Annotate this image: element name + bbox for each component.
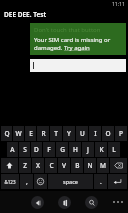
button[interactable]: DEE DEE. Test: [0, 8, 128, 20]
staticText: &123: [4, 179, 16, 185]
staticText: Q: [4, 129, 10, 138]
button[interactable]: Search: [85, 196, 98, 209]
button[interactable]: A: [7, 142, 18, 157]
button[interactable]: L: [108, 142, 120, 157]
button[interactable]: D: [31, 142, 42, 157]
button[interactable]: Backspace: [110, 158, 127, 173]
staticText: M: [100, 161, 106, 170]
staticText: E: [29, 129, 33, 138]
button[interactable]: Enter: [108, 174, 127, 189]
staticText: D: [34, 145, 39, 154]
staticText: P: [119, 129, 123, 138]
button[interactable]: T: [50, 126, 62, 141]
staticText: C: [49, 161, 54, 170]
staticText: N: [87, 161, 93, 170]
button[interactable]: P: [115, 126, 127, 141]
button[interactable]: [30, 59, 126, 72]
staticText: X: [36, 161, 40, 170]
staticText: H: [73, 145, 78, 154]
button[interactable]: .: [94, 174, 107, 189]
button[interactable]: F: [43, 142, 55, 157]
button[interactable]: J: [82, 142, 94, 157]
staticText: J: [87, 145, 89, 154]
button[interactable]: Z: [19, 158, 31, 173]
staticText: R: [41, 129, 46, 138]
staticText: damaged.: [34, 44, 64, 52]
staticText: A: [10, 145, 15, 154]
button[interactable]: S: [19, 142, 30, 157]
button[interactable]: K: [95, 142, 107, 157]
staticText: K: [99, 145, 104, 154]
staticText: T: [54, 129, 58, 138]
staticText: Z: [23, 161, 27, 170]
button[interactable]: G: [56, 142, 68, 157]
button[interactable]: C: [45, 158, 57, 173]
button[interactable]: X: [32, 158, 44, 173]
button[interactable]: R: [37, 126, 49, 141]
button[interactable]: W: [13, 126, 24, 141]
button[interactable]: O: [102, 126, 114, 141]
staticText: Don't touch that button: [34, 26, 101, 34]
staticText: U: [80, 129, 85, 138]
button[interactable]: I: [89, 126, 101, 141]
button[interactable]: More options: [113, 201, 123, 203]
staticText: V: [62, 161, 66, 170]
staticText: F: [47, 145, 51, 154]
staticText: 11:11: [112, 1, 125, 8]
button[interactable]: Emoji: [34, 174, 47, 189]
staticText: S: [23, 145, 27, 154]
staticText: O: [105, 129, 111, 138]
staticText: space: [63, 178, 78, 185]
staticText: W: [15, 129, 22, 138]
staticText: Y: [67, 129, 71, 138]
button[interactable]: space: [48, 174, 93, 189]
staticText: ,: [26, 177, 28, 186]
staticText: DEE DEE. Test: [4, 10, 47, 19]
staticText: L: [112, 145, 116, 154]
button[interactable]: N: [84, 158, 96, 173]
button[interactable]: Don't touch that button: [30, 23, 126, 55]
button[interactable]: E: [25, 126, 36, 141]
button[interactable]: Y: [63, 126, 75, 141]
button[interactable]: Back: [31, 196, 44, 209]
button[interactable]: Q: [1, 126, 12, 141]
staticText: B: [75, 161, 80, 170]
button[interactable]: Home: [58, 196, 71, 209]
button[interactable]: ,: [20, 174, 33, 189]
staticText: Your SIM card is missing or: [34, 36, 111, 44]
button[interactable]: Shift: [1, 158, 18, 173]
button[interactable]: B: [71, 158, 83, 173]
button[interactable]: &123: [1, 174, 19, 189]
button[interactable]: U: [76, 126, 88, 141]
button[interactable]: V: [58, 158, 70, 173]
staticText: G: [60, 145, 65, 154]
button[interactable]: Try again: [64, 44, 90, 52]
staticText: I: [94, 129, 97, 138]
button[interactable]: M: [97, 158, 109, 173]
button[interactable]: H: [69, 142, 81, 157]
staticText: .: [100, 177, 102, 186]
